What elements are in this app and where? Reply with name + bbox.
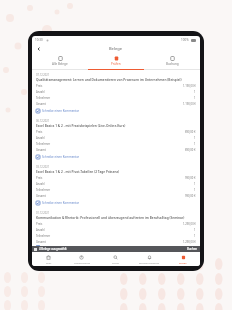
staticText: Preis bbox=[36, 222, 43, 226]
button[interactable]: 03.12.2021 bbox=[32, 162, 200, 208]
button[interactable]: Belege bbox=[166, 252, 200, 266]
staticText: Schreibe einen Kommentar bbox=[42, 109, 79, 113]
staticText: Preis bbox=[36, 176, 43, 180]
staticText: Excel Basics 1 & 2 - mit Praxisbeispiele… bbox=[36, 124, 126, 128]
button[interactable]: 01.12.2021 bbox=[32, 208, 200, 246]
staticText: Teilnehmer bbox=[36, 234, 51, 238]
button[interactable]: Buchung bbox=[144, 53, 200, 69]
staticText: Start bbox=[46, 261, 52, 264]
staticText: Weiterbildung bbox=[74, 261, 90, 264]
staticText: 100% bbox=[181, 38, 189, 42]
staticText: 01.12.2021 bbox=[36, 211, 50, 215]
staticText: 1 bbox=[194, 234, 196, 238]
staticText: 1 bbox=[194, 136, 196, 140]
staticText: Prüfen bbox=[111, 62, 121, 66]
button[interactable]: Back bbox=[35, 45, 42, 52]
staticText: Teilnehmer bbox=[36, 96, 51, 100]
staticText: Teilnehmer bbox=[36, 188, 51, 192]
button[interactable]: Schreibe einen Kommentar bbox=[36, 154, 79, 160]
staticText: 1.290,00 € bbox=[183, 240, 196, 244]
staticText: Anzahl bbox=[36, 90, 45, 94]
staticText: 1 bbox=[194, 96, 196, 100]
staticText: 990,00 € bbox=[185, 194, 196, 198]
button[interactable]: Schreibe einen Kommentar bbox=[36, 200, 79, 206]
staticText: 1.190,00 € bbox=[183, 102, 196, 106]
staticText: Alle Belege bbox=[52, 62, 68, 66]
staticText: Belege bbox=[109, 46, 123, 51]
staticText: 890,00 € bbox=[185, 130, 196, 134]
button[interactable]: Schreibe einen Kommentar bbox=[36, 108, 79, 114]
staticText: Kommunikation & Rhetorik: Professionell … bbox=[36, 216, 185, 220]
button[interactable]: Weiterbildung bbox=[65, 252, 98, 266]
staticText: 10:30 bbox=[35, 38, 43, 42]
button[interactable]: Benachrichtigung bbox=[132, 252, 166, 266]
staticText: 1 bbox=[194, 182, 196, 186]
staticText: 890,00 € bbox=[185, 148, 196, 152]
staticText: 1 bbox=[194, 188, 196, 192]
staticText: Buchung bbox=[166, 62, 179, 66]
staticText: Belege bbox=[179, 261, 187, 264]
staticText: Gesamt bbox=[36, 148, 46, 152]
staticText: Gesamt bbox=[36, 194, 46, 198]
staticText: Qualitätsmanagement: Lernen und Dokument… bbox=[36, 78, 182, 82]
staticText: 990,00 € bbox=[185, 176, 196, 180]
staticText: Teilnehmer bbox=[36, 142, 51, 146]
staticText: Schreibe einen Kommentar bbox=[42, 155, 79, 159]
staticText: 06.12.2021 bbox=[36, 119, 50, 123]
staticText: 1.190,00 € bbox=[183, 84, 196, 88]
staticText: Excel Basics 1 & 2 - mit Pivot-Tabellen … bbox=[36, 170, 120, 174]
staticText: 1 bbox=[194, 228, 196, 232]
staticText: 1 bbox=[194, 90, 196, 94]
staticText: 1 bbox=[194, 142, 196, 146]
button[interactable]: Suche bbox=[98, 252, 132, 266]
button[interactable]: Alle Belege bbox=[32, 53, 88, 69]
button[interactable]: 06.12.2021 bbox=[32, 116, 200, 162]
staticText: Buchen bbox=[187, 247, 198, 251]
staticText: Preis bbox=[36, 84, 43, 88]
staticText: Anzahl bbox=[36, 136, 45, 140]
staticText: Anzahl bbox=[36, 228, 45, 232]
staticText: Gesamt bbox=[36, 240, 46, 244]
staticText: Gesamt bbox=[36, 102, 46, 106]
staticText: 07.12.2021 bbox=[36, 73, 50, 77]
staticText: 1.290,00 € bbox=[183, 222, 196, 226]
staticText: 03.12.2021 bbox=[36, 165, 50, 169]
staticText: Preis bbox=[36, 130, 43, 134]
button[interactable]: Buchen bbox=[187, 247, 198, 251]
staticText: Suche bbox=[112, 261, 119, 264]
staticText: Benachrichtigung bbox=[139, 261, 159, 264]
staticText: Schreibe einen Kommentar bbox=[42, 201, 79, 205]
button[interactable]: Prüfen bbox=[88, 53, 144, 69]
button[interactable]: Start bbox=[32, 252, 65, 266]
staticText: 4 Belege ausgewählt bbox=[39, 247, 67, 251]
button[interactable]: 07.12.2021 bbox=[32, 70, 200, 116]
staticText: Anzahl bbox=[36, 182, 45, 186]
